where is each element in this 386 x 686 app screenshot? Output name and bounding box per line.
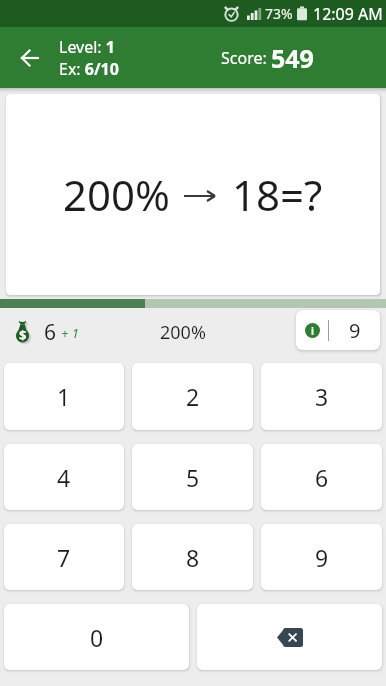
staticText: i <box>311 324 314 338</box>
button[interactable]: 2 <box>132 363 253 430</box>
button[interactable]: 8 <box>132 524 253 590</box>
staticText: 549 <box>271 41 314 75</box>
staticText: 1 <box>57 381 71 412</box>
staticText: 200% <box>160 320 206 345</box>
staticText: $ <box>19 326 27 344</box>
button[interactable]: 1 <box>4 363 124 430</box>
staticText: 9 <box>315 542 329 573</box>
staticText: 200% <box>63 166 170 223</box>
staticText: Ex: 6/10 <box>59 58 119 80</box>
staticText: 4 <box>57 462 71 493</box>
button[interactable]: 4 <box>4 444 124 510</box>
staticText: 9 <box>349 317 361 344</box>
button[interactable]: 3 <box>261 363 382 430</box>
button[interactable]: i <box>296 310 380 350</box>
staticText: + 1 <box>61 324 79 342</box>
button[interactable] <box>0 27 54 88</box>
staticText: 5 <box>186 462 200 493</box>
button[interactable]: 9 <box>261 524 382 590</box>
staticText: 3 <box>315 381 329 412</box>
button[interactable]: 5 <box>132 444 253 510</box>
staticText: 8 <box>186 542 200 573</box>
staticText: Level: 1 <box>59 36 115 58</box>
button[interactable] <box>197 604 382 670</box>
button[interactable]: 6 <box>261 444 382 510</box>
button[interactable]: 7 <box>4 524 124 590</box>
staticText: 7 <box>57 542 71 573</box>
staticText: 2 <box>186 381 200 412</box>
button[interactable]: 0 <box>4 604 189 670</box>
staticText: 6 <box>315 462 329 493</box>
staticText: 73% <box>265 4 293 23</box>
staticText: 12:09 AM <box>313 3 383 25</box>
staticText: Score: <box>221 47 271 69</box>
staticText: 0 <box>90 622 104 653</box>
staticText: 18=? <box>232 166 323 223</box>
staticText: 6 <box>44 318 57 347</box>
